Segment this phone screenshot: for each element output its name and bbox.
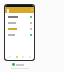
button[interactable]: Tab 1 (7, 54, 12, 59)
button[interactable] (5, 14, 34, 20)
button[interactable] (5, 26, 34, 32)
button[interactable]: Tab 3 (20, 54, 25, 59)
button[interactable] (12, 63, 24, 66)
button[interactable] (5, 20, 34, 26)
button[interactable]: Tab 4 (27, 54, 32, 59)
button[interactable]: Tab 2 (14, 54, 19, 59)
button[interactable] (5, 32, 34, 38)
button[interactable]: Menu (6, 8, 9, 13)
